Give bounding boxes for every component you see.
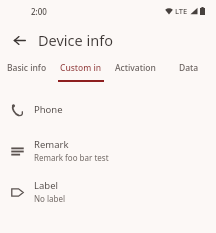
button[interactable]: Label bbox=[0, 171, 216, 212]
other: Phone bbox=[11, 104, 24, 117]
staticText: No label bbox=[34, 193, 66, 204]
staticText: Activation bbox=[115, 62, 156, 74]
staticText: Custom in bbox=[60, 62, 102, 74]
button[interactable]: Remark bbox=[0, 130, 216, 171]
other: Remark bbox=[11, 145, 24, 158]
staticText: Data bbox=[179, 62, 199, 74]
button[interactable]: Activation bbox=[108, 58, 162, 82]
staticText: Remark bbox=[34, 138, 69, 151]
button[interactable]: Custom in bbox=[54, 58, 108, 82]
button[interactable]: Data bbox=[162, 58, 216, 82]
button[interactable]: Phone bbox=[0, 89, 216, 130]
button[interactable]: Back bbox=[7, 28, 31, 52]
staticText: Remark foo bar test bbox=[34, 152, 109, 163]
staticText: Label bbox=[34, 179, 58, 192]
button[interactable]: Basic info bbox=[0, 58, 54, 82]
staticText: Phone bbox=[34, 103, 63, 116]
staticText: LTE bbox=[175, 6, 188, 16]
staticText: Device info bbox=[38, 30, 113, 50]
other: Label bbox=[11, 186, 24, 199]
staticText: 2:00 bbox=[31, 6, 47, 17]
staticText: Basic info bbox=[7, 62, 47, 74]
